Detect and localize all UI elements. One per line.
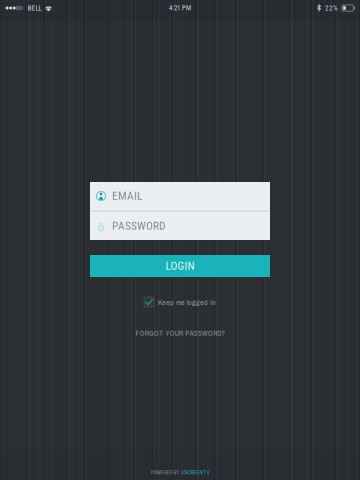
- staticText: FORGOT YOUR PASSWORD?: [135, 328, 224, 338]
- staticText: PASSWORD: [112, 219, 165, 233]
- button[interactable]: Keep me logged in: [144, 294, 216, 310]
- staticText: BELL: [27, 4, 41, 12]
- staticText: Keep me logged in: [158, 297, 216, 307]
- staticText: POWERED BY: [150, 469, 179, 476]
- staticText: LOGIN: [165, 259, 194, 273]
- button[interactable]: PASSWORD: [90, 211, 270, 240]
- staticText: USCREEN TV: [181, 469, 209, 476]
- button[interactable]: LOGIN: [90, 255, 270, 277]
- staticText: 22%: [325, 4, 338, 12]
- staticText: 4:21 PM: [169, 4, 191, 12]
- staticText: EMAIL: [112, 189, 142, 203]
- button[interactable]: FORGOT YOUR PASSWORD?: [90, 326, 270, 340]
- button[interactable]: EMAIL: [90, 181, 270, 210]
